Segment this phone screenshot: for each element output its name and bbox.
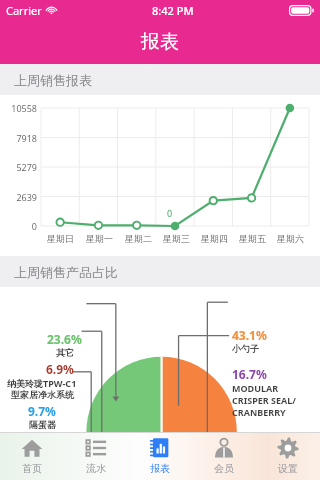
- staticText: 6.9%: [46, 361, 74, 377]
- staticText: 会员: [214, 462, 234, 475]
- staticText: CRANBERRY: [232, 406, 286, 418]
- staticText: 报表: [150, 462, 170, 475]
- staticText: 2639: [0, 191, 37, 203]
- button[interactable]: 流水: [64, 432, 128, 480]
- staticText: 星期四: [201, 233, 228, 244]
- staticText: 上周销售报表: [14, 72, 92, 88]
- staticText: 隔蛋器: [29, 419, 56, 430]
- staticText: 首页: [22, 462, 42, 475]
- staticText: CRISPER SEAL/: [232, 394, 297, 406]
- staticText: 10558: [0, 102, 37, 114]
- staticText: 星期一: [86, 233, 113, 244]
- staticText: 23.6%: [47, 331, 82, 347]
- staticText: 上周销售产品占比: [14, 264, 118, 280]
- staticText: 星期三: [163, 233, 190, 244]
- button[interactable]: 设置: [256, 432, 320, 480]
- staticText: 纳美玲珑TPW-C1: [7, 377, 77, 389]
- staticText: MODULAR: [232, 382, 279, 394]
- staticText: 报表: [141, 30, 179, 54]
- button[interactable]: 会员: [192, 432, 256, 480]
- button[interactable]: 报表: [128, 432, 192, 480]
- staticText: 其它: [56, 347, 74, 358]
- staticText: 5279: [0, 161, 37, 173]
- staticText: 型家居净水系统: [11, 389, 74, 400]
- staticText: 0: [0, 220, 37, 232]
- staticText: 设置: [278, 462, 298, 475]
- staticText: 星期日: [47, 233, 74, 244]
- staticText: 8:42 PM: [152, 3, 194, 18]
- staticText: 16.7%: [232, 366, 267, 382]
- staticText: 0: [167, 207, 173, 219]
- staticText: 小勺子: [232, 343, 259, 354]
- staticText: 9.7%: [28, 403, 56, 419]
- staticText: 7918: [0, 132, 37, 144]
- staticText: 流水: [86, 462, 106, 475]
- staticText: 43.1%: [232, 327, 267, 343]
- staticText: 星期五: [239, 233, 266, 244]
- staticText: 星期二: [125, 233, 152, 244]
- staticText: Carrier: [6, 3, 42, 18]
- staticText: 星期六: [277, 233, 304, 244]
- button[interactable]: 首页: [0, 432, 64, 480]
